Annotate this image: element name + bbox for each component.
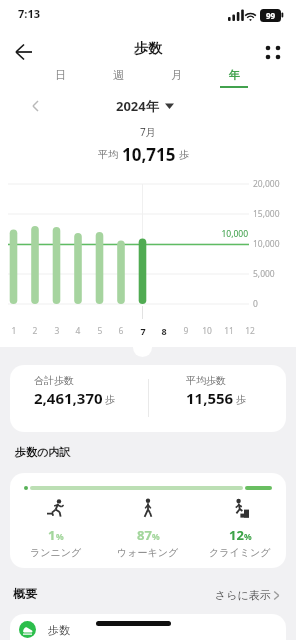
staticText: 7:13: [18, 6, 40, 21]
staticText: 20,000: [253, 178, 280, 190]
staticText: 12: [229, 526, 244, 544]
staticText: 99: [266, 10, 276, 21]
staticText: 8: [155, 325, 173, 337]
staticText: 11,556: [186, 388, 234, 408]
button[interactable]: 月: [147, 62, 205, 88]
staticText: 概要: [13, 586, 37, 601]
staticText: 2: [26, 325, 44, 337]
staticText: 歩: [105, 393, 115, 406]
staticText: 4: [69, 325, 87, 337]
button[interactable]: 日: [31, 62, 89, 88]
button[interactable]: 2024年: [0, 96, 293, 116]
button[interactable]: 12: [194, 498, 286, 564]
button[interactable]: 1: [10, 498, 102, 564]
staticText: ウォーキング: [117, 546, 179, 559]
staticText: 5: [91, 325, 109, 337]
staticText: 10: [198, 325, 216, 337]
staticText: 1: [48, 526, 56, 544]
staticText: 歩: [179, 148, 189, 161]
staticText: 10,000: [206, 228, 248, 240]
staticText: 年: [229, 68, 240, 82]
staticText: 歩数: [48, 623, 70, 637]
staticText: 7: [134, 325, 152, 337]
staticText: 87: [137, 526, 152, 544]
staticText: 15,000: [253, 208, 280, 220]
staticText: %: [244, 531, 252, 543]
staticText: %: [152, 531, 160, 543]
staticText: 0: [253, 298, 258, 310]
staticText: 5,000: [253, 268, 275, 280]
staticText: 平均: [98, 148, 118, 161]
button[interactable]: 週: [89, 62, 147, 88]
staticText: クライミング: [209, 546, 271, 559]
staticText: 週: [113, 68, 124, 82]
button[interactable]: [258, 40, 288, 66]
staticText: 歩数の内訳: [15, 445, 71, 459]
staticText: 2024年: [116, 97, 159, 115]
staticText: 3: [48, 325, 66, 337]
staticText: 月: [171, 68, 182, 82]
staticText: 10,000: [253, 238, 280, 250]
staticText: 12: [241, 325, 259, 337]
staticText: 歩数: [134, 40, 162, 58]
staticText: 7月: [140, 125, 156, 139]
button[interactable]: 歩数: [10, 614, 286, 640]
button[interactable]: [8, 36, 40, 64]
button[interactable]: 合計歩数: [10, 365, 286, 432]
staticText: 平均歩数: [186, 374, 226, 387]
staticText: 合計歩数: [34, 374, 74, 387]
staticText: %: [56, 531, 64, 543]
button[interactable]: 年: [205, 62, 263, 88]
staticText: 歩: [236, 393, 246, 406]
button[interactable]: 87: [102, 498, 194, 564]
staticText: 1: [5, 325, 23, 337]
staticText: 2,461,370: [34, 388, 103, 408]
button[interactable]: 1: [10, 473, 286, 568]
staticText: 日: [55, 68, 66, 82]
staticText: 9: [177, 325, 195, 337]
staticText: 10,715: [122, 143, 176, 166]
staticText: 6: [112, 325, 130, 337]
button[interactable]: さらに表示: [186, 586, 280, 604]
staticText: 11: [220, 325, 238, 337]
staticText: さらに表示: [215, 588, 271, 602]
staticText: ランニング: [30, 546, 82, 559]
